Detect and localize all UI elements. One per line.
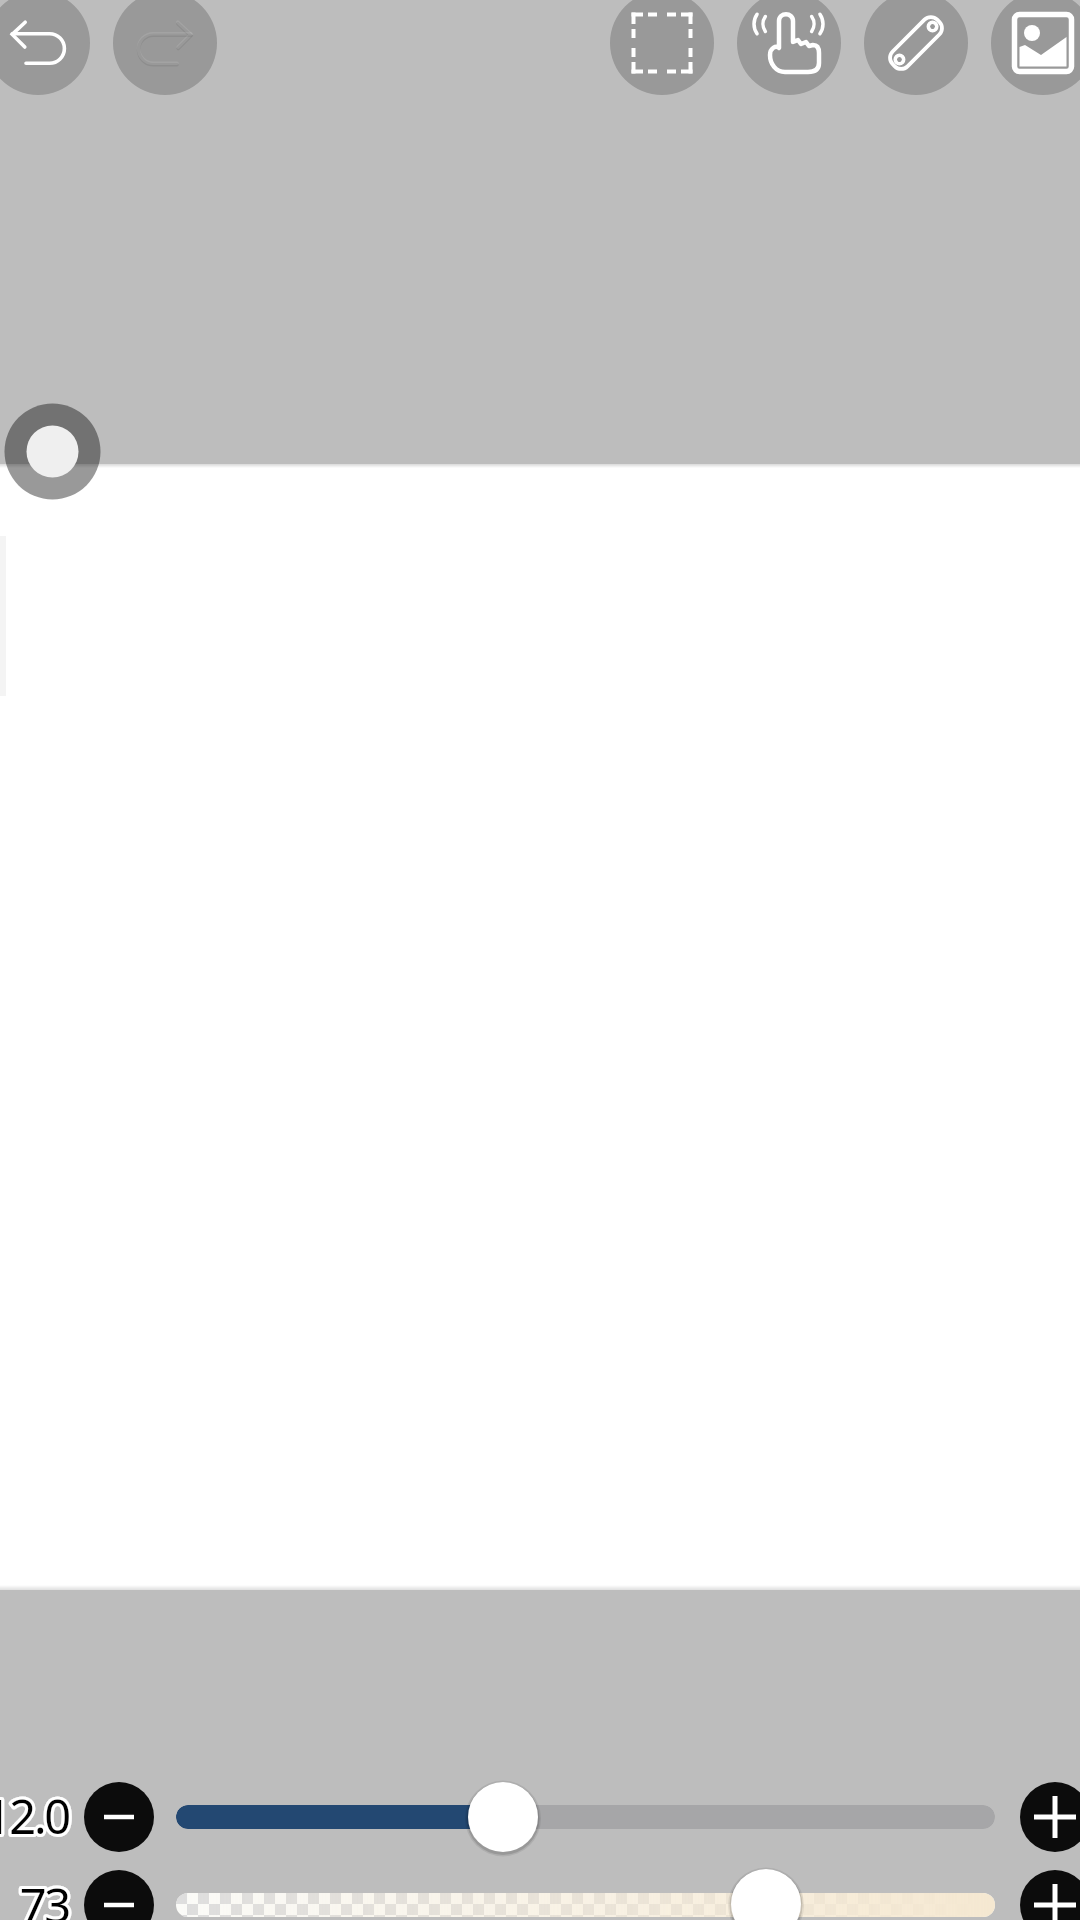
staticText: 12.0 [0,1784,69,1848]
button[interactable]: Increase size [1020,1782,1080,1852]
button[interactable]: Select [610,0,714,95]
button[interactable]: Brush size slider handle [464,1778,542,1856]
button[interactable]: Decrease opacity [84,1870,154,1920]
button[interactable]: Redo [113,0,217,95]
staticText: 73 [0,1873,69,1920]
button[interactable]: Decrease size [84,1782,154,1852]
button[interactable]: Image [991,0,1080,95]
button[interactable]: Ruler [864,0,968,95]
button[interactable]: Increase opacity [1020,1870,1080,1920]
button[interactable]: Opacity slider handle [727,1865,805,1920]
staticText: 73 [0,1873,69,1920]
button[interactable]: Undo [0,0,90,95]
button[interactable]: Touch [737,0,841,95]
button[interactable]: Brush size slider [176,1805,995,1829]
staticText: 12.0 [0,1784,69,1848]
button[interactable]: Opacity slider [176,1893,995,1917]
